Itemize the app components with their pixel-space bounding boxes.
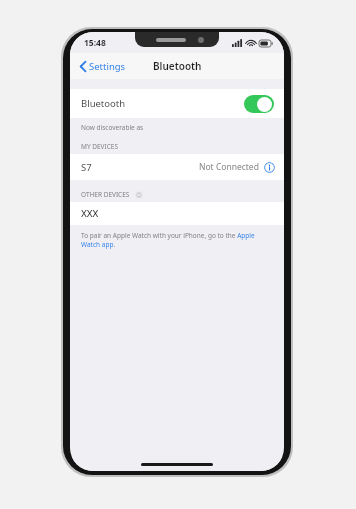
button[interactable]: More info about S7 — [264, 162, 275, 173]
staticText: 15:48 — [84, 37, 106, 49]
button[interactable]: S7 — [70, 154, 284, 180]
staticText: Bluetooth — [81, 97, 126, 110]
staticText: Now discoverable as — [81, 123, 144, 132]
staticText: Settings — [89, 60, 126, 73]
button[interactable]: Settings — [77, 57, 129, 76]
staticText: S7 — [81, 161, 92, 174]
staticText: OTHER DEVICES — [81, 190, 130, 199]
button[interactable]: Bluetooth — [70, 89, 284, 118]
button[interactable]: Bluetooth on — [244, 95, 274, 113]
staticText: Bluetooth — [153, 59, 202, 73]
staticText: MY DEVICES — [81, 142, 119, 151]
staticText: To pair an Apple Watch with your iPhone,… — [81, 231, 270, 249]
staticText: Not Connected — [199, 161, 259, 173]
staticText: XXX — [81, 207, 99, 220]
button[interactable]: XXX — [70, 202, 284, 225]
